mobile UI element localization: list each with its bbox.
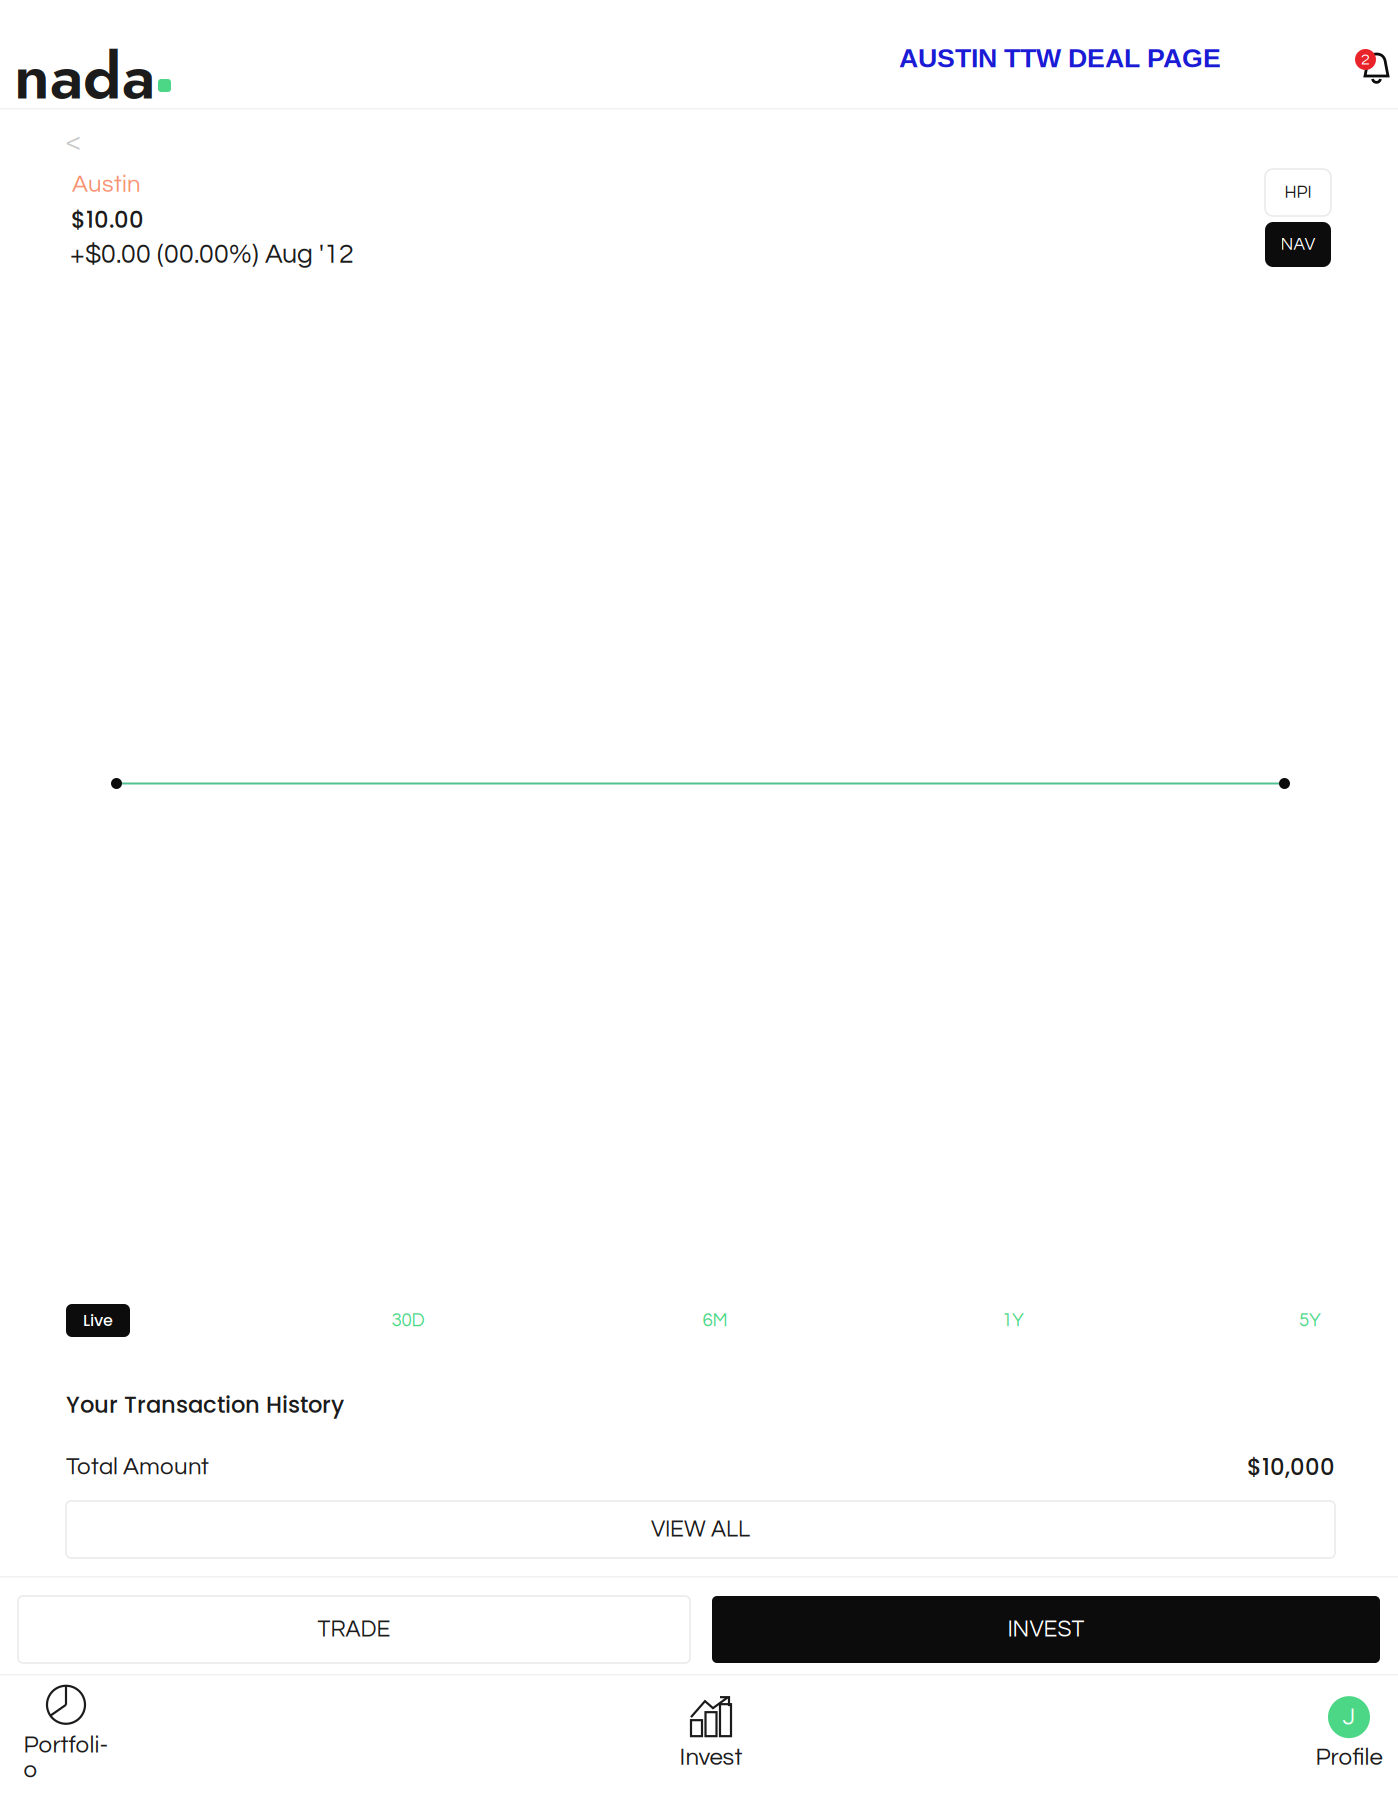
button[interactable]: Notifications (1354, 44, 1398, 88)
staticText: Your Transaction History (66, 1389, 344, 1421)
button[interactable]: VIEW ALL (66, 1501, 1335, 1558)
button[interactable]: Live (66, 1304, 130, 1337)
button[interactable]: Portfolio (22, 1697, 110, 1769)
staticText: Profile (1315, 1745, 1382, 1770)
staticText: $10.00 (71, 204, 144, 236)
button[interactable]: 30D (378, 1304, 438, 1337)
staticText: +$0.00 (00.00%) Aug '12 (70, 241, 354, 268)
staticText: INVEST (1007, 1618, 1084, 1641)
staticText: AUSTIN TTW DEAL PAGE (899, 43, 1221, 73)
staticText: < (66, 128, 81, 156)
button[interactable]: 1Y (987, 1304, 1039, 1337)
staticText: 6M (702, 1311, 727, 1330)
staticText: nada (14, 30, 155, 122)
button[interactable]: NAV (1265, 222, 1331, 267)
staticText: J (1342, 1705, 1355, 1729)
button[interactable]: Back (66, 128, 108, 156)
button[interactable]: 6M (688, 1304, 742, 1337)
staticText: VIEW ALL (651, 1518, 750, 1541)
staticText: 1Y (1002, 1311, 1024, 1330)
button[interactable]: INVEST (712, 1596, 1380, 1663)
button[interactable]: HPI (1265, 169, 1331, 216)
staticText: 30D (391, 1311, 424, 1330)
staticText: 2 (1361, 51, 1370, 68)
staticText: 5Y (1299, 1311, 1321, 1330)
staticText: Total Amount (66, 1455, 209, 1479)
staticText: Austin (72, 172, 141, 197)
button[interactable]: Invest (666, 1697, 756, 1769)
staticText: HPI (1284, 184, 1311, 201)
button[interactable]: J (1302, 1697, 1396, 1769)
button[interactable]: 5Y (1284, 1304, 1336, 1337)
staticText: $10,000 (1247, 1451, 1335, 1483)
button[interactable]: TRADE (18, 1596, 690, 1663)
staticText: Invest (679, 1745, 742, 1770)
staticText: Live (83, 1309, 113, 1332)
staticText: NAV (1280, 236, 1315, 253)
staticText: TRADE (317, 1618, 390, 1641)
staticText: Portfolio (23, 1733, 108, 1782)
